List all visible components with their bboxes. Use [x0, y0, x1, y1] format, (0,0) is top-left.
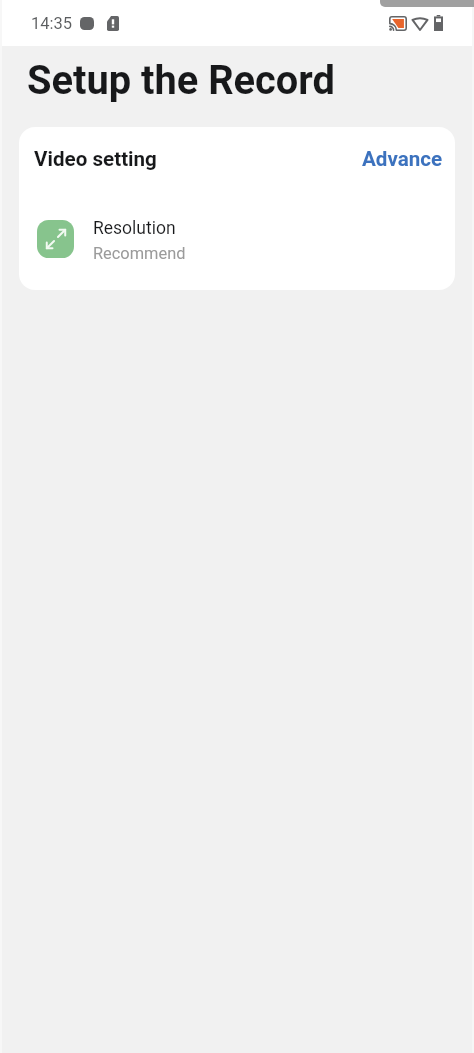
staticText: Advance [362, 147, 443, 171]
staticText: Recommend [93, 244, 186, 263]
other: Resolution [37, 220, 74, 258]
button[interactable]: Resolution [19, 175, 455, 290]
staticText: 14:35 [31, 14, 73, 33]
staticText: Video setting [34, 147, 157, 171]
staticText: Resolution [93, 218, 176, 239]
button[interactable]: Advance [356, 143, 449, 175]
staticText: Setup the Record [27, 57, 335, 104]
